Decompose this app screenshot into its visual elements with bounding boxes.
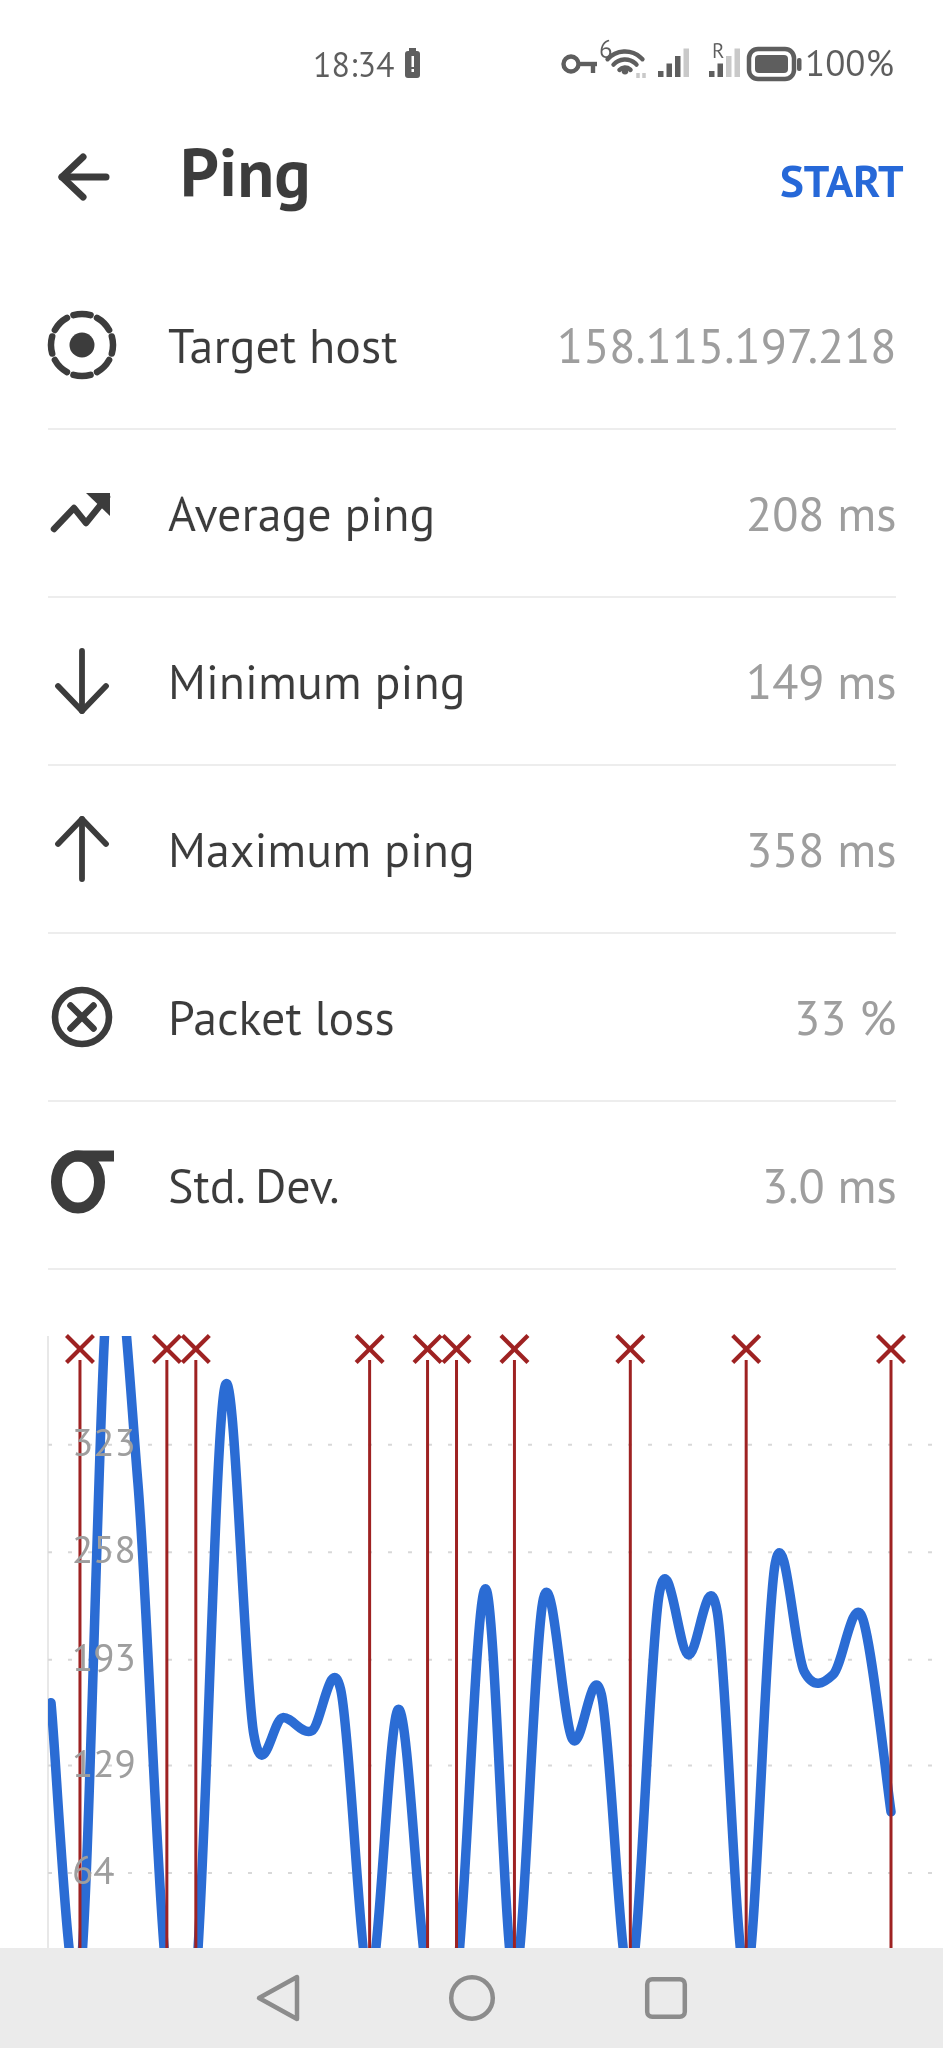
button[interactable]: Minimum ping [0, 598, 943, 766]
staticText: START [780, 151, 904, 209]
staticText: Maximum ping [168, 818, 475, 880]
button[interactable]: Home [374, 1948, 570, 2048]
staticText: 129 [72, 1737, 136, 1787]
staticText: Target host [168, 314, 398, 376]
button[interactable]: Std. Dev. [0, 1102, 943, 1270]
button[interactable]: Average ping [0, 430, 943, 598]
staticText: R [712, 37, 725, 64]
button[interactable]: START [760, 135, 924, 225]
staticText: 149 ms [746, 650, 897, 712]
button[interactable]: Back [180, 1948, 376, 2048]
button[interactable]: Back [29, 122, 139, 232]
staticText: 358 ms [746, 818, 897, 880]
staticText: 100% [805, 38, 895, 86]
staticText: 158.115.197.218 [557, 314, 897, 376]
staticText: 3.0 ms [762, 1154, 897, 1216]
button[interactable]: Maximum ping [0, 766, 943, 934]
staticText: Std. Dev. [168, 1154, 340, 1216]
staticText: 64 [72, 1844, 115, 1894]
staticText: 323 [72, 1416, 136, 1466]
staticText: 208 ms [746, 482, 897, 544]
staticText: 193 [72, 1631, 136, 1681]
staticText: 18:34 [313, 42, 395, 86]
staticText: Average ping [168, 482, 436, 544]
button[interactable]: Recent apps [568, 1948, 764, 2048]
staticText: Packet loss [168, 986, 395, 1048]
button[interactable]: Target host [0, 262, 943, 430]
staticText: 258 [72, 1523, 136, 1573]
staticText: 33 % [794, 986, 897, 1048]
button[interactable]: Packet loss [0, 934, 943, 1102]
staticText: Ping [180, 128, 311, 216]
staticText: Minimum ping [168, 650, 466, 712]
staticText: 6 [599, 33, 613, 65]
